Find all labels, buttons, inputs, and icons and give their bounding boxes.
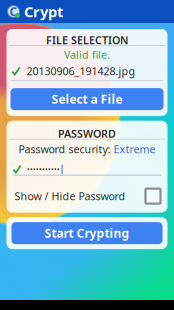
staticText: C — [9, 3, 17, 19]
button[interactable]: Start Crypting — [6, 217, 167, 249]
button[interactable]: Show or hide password — [145, 189, 160, 204]
button[interactable]: Select a File — [6, 88, 167, 110]
staticText: Password security: — [18, 142, 113, 156]
staticText: Start Crypting — [44, 225, 129, 241]
staticText: Extreme — [113, 142, 155, 156]
staticText: Show / Hide Password — [14, 189, 125, 203]
staticText: FILE SELECTION — [46, 33, 128, 47]
staticText: Crypt — [24, 2, 63, 21]
staticText: Valid file. — [64, 47, 110, 62]
staticText: Select a File — [51, 91, 122, 107]
staticText: 20130906_191428.jpg — [26, 64, 135, 78]
staticText: PASSWORD — [58, 127, 116, 141]
